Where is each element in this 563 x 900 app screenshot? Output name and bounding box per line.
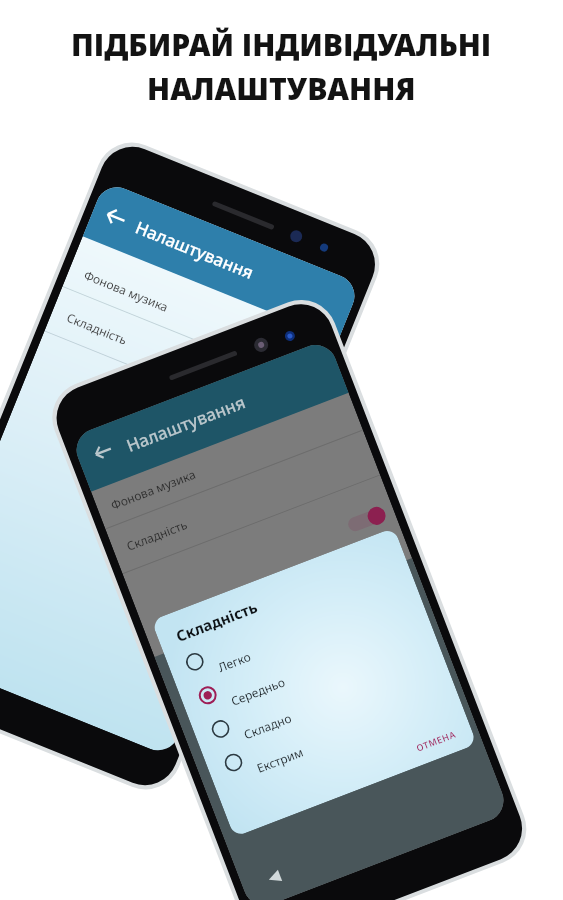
- button[interactable]: Individual settings promo: [0, 0, 563, 900]
